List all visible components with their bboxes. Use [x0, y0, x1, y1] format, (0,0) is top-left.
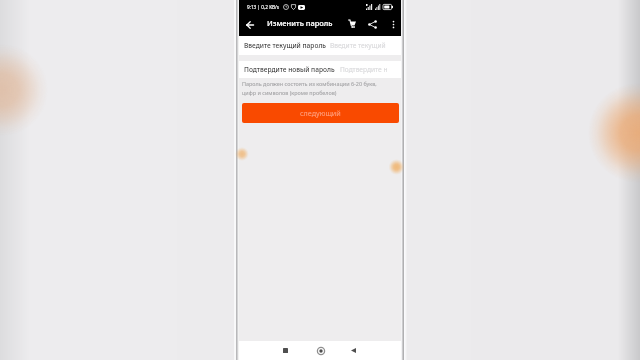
button[interactable]: Share [364, 16, 381, 33]
button[interactable]: Back [241, 16, 258, 33]
button[interactable]: Back [344, 341, 363, 360]
staticText: Подтвердите новый пароль [244, 65, 335, 74]
button[interactable]: Home [311, 341, 330, 360]
button[interactable]: следующий [242, 103, 399, 123]
button[interactable]: More options [385, 16, 401, 32]
staticText: Введите текущий пароль [244, 41, 327, 50]
staticText: следующий [300, 108, 341, 118]
button[interactable]: Cart [343, 15, 360, 32]
staticText: Введите текущий [330, 41, 386, 50]
staticText: Подтвердите н [340, 65, 388, 74]
staticText: Изменить пароль [267, 18, 333, 28]
staticText: Пароль должен состоять из комбинации 6-2… [242, 80, 384, 96]
button[interactable]: Recent apps [276, 341, 295, 360]
staticText: 9:13 | 0,2 KB/s [247, 4, 280, 10]
